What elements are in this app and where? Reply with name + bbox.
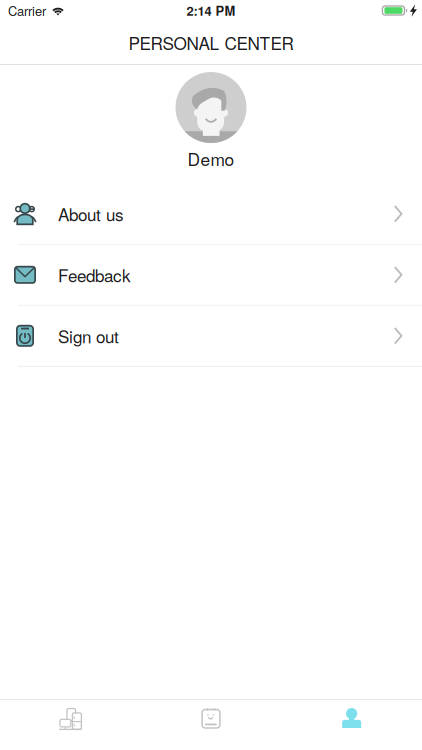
staticText: About us (58, 202, 124, 226)
button[interactable]: Personal Center (281, 700, 422, 750)
staticText: Carrier (8, 1, 46, 20)
staticText: Feedback (58, 263, 131, 287)
staticText: PERSONAL CENTER (128, 30, 293, 55)
button[interactable]: Devices (0, 700, 141, 750)
staticText: Demo (187, 146, 234, 171)
staticText: 2:14 PM (186, 1, 235, 20)
staticText: Sign out (58, 324, 119, 348)
button[interactable]: Records (141, 700, 281, 750)
button[interactable]: About us (0, 184, 422, 245)
button[interactable]: Feedback (0, 245, 422, 306)
button[interactable]: Sign out (0, 306, 422, 367)
